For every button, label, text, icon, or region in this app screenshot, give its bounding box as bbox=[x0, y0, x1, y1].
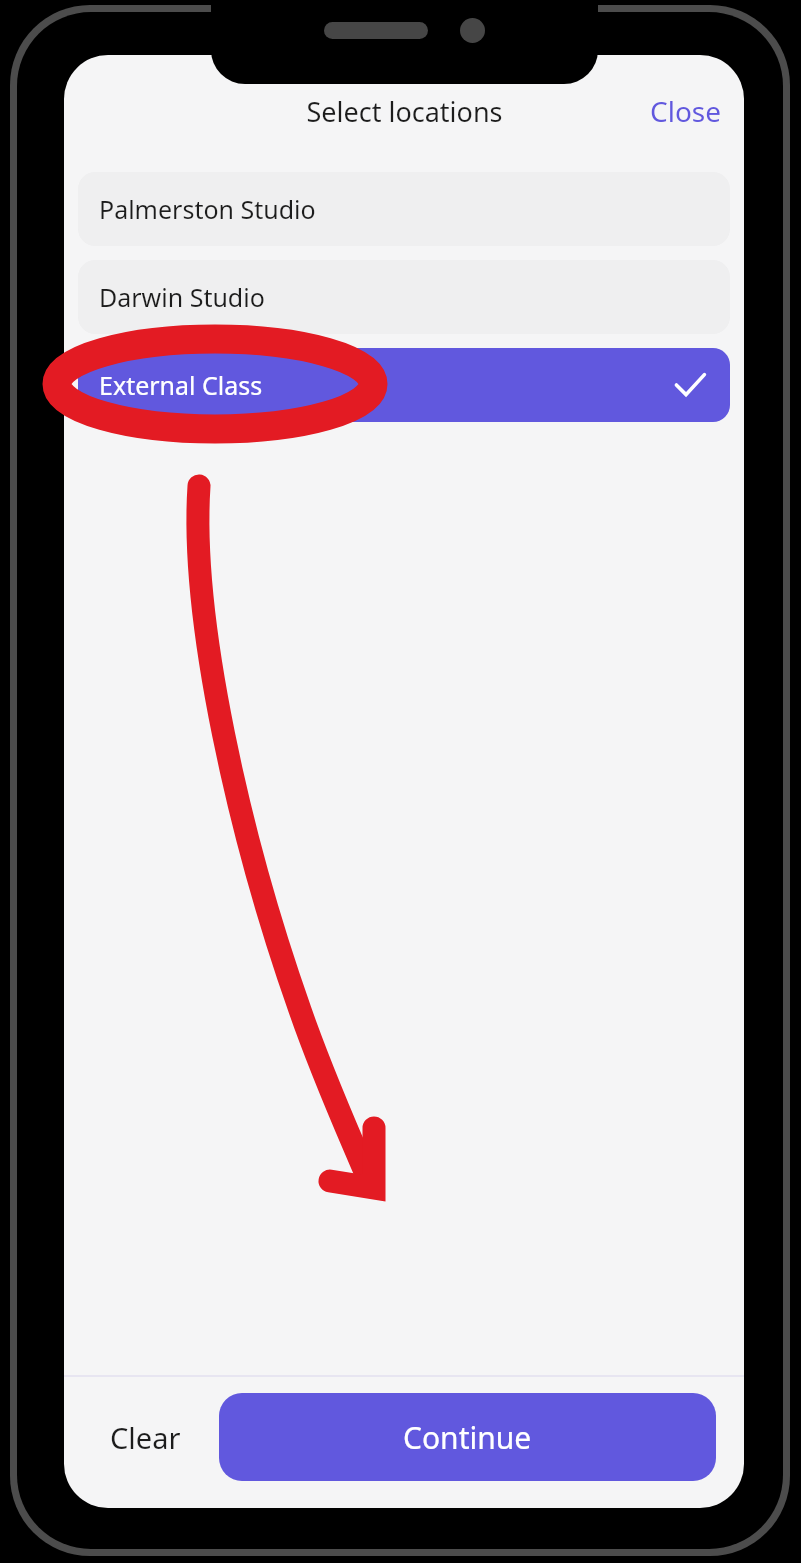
staticText: Clear bbox=[110, 1418, 181, 1457]
button[interactable]: External Class bbox=[78, 348, 730, 422]
button[interactable]: Continue bbox=[219, 1393, 716, 1481]
button[interactable]: Clear bbox=[94, 1398, 197, 1477]
button[interactable]: Darwin Studio bbox=[78, 260, 730, 334]
other: Selected bbox=[670, 365, 710, 405]
staticText: Close bbox=[650, 92, 722, 130]
staticText: Palmerston Studio bbox=[99, 192, 316, 226]
button[interactable]: Close bbox=[634, 84, 744, 138]
button[interactable]: Palmerston Studio bbox=[78, 172, 730, 246]
staticText: Select locations bbox=[306, 93, 503, 130]
staticText: External Class bbox=[99, 368, 263, 402]
staticText: Continue bbox=[403, 1417, 532, 1458]
staticText: Darwin Studio bbox=[99, 280, 265, 314]
